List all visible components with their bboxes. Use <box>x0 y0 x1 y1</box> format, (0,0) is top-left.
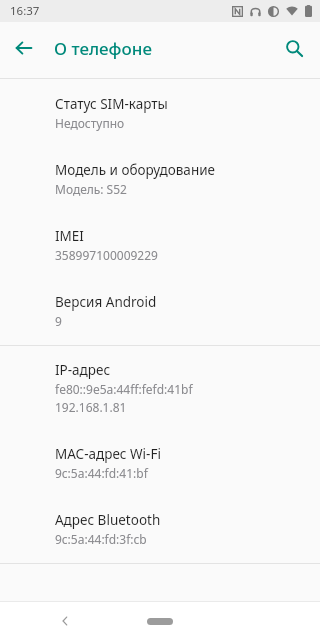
staticText: Недоступно <box>55 115 125 131</box>
staticText: О телефоне <box>54 37 152 60</box>
button[interactable]: Адрес Bluetooth <box>0 497 320 563</box>
staticText: 16:37 <box>10 3 40 19</box>
button[interactable]: Back <box>50 606 80 636</box>
button[interactable]: Back <box>6 30 42 66</box>
staticText: Статус SIM-карты <box>55 95 168 113</box>
button[interactable]: MAC-адрес Wi-Fi <box>0 431 320 497</box>
button[interactable]: IMEI <box>0 213 320 279</box>
button[interactable]: Home <box>138 609 182 633</box>
staticText: Версия Android <box>55 293 157 311</box>
button[interactable]: Версия Android <box>0 279 320 345</box>
staticText: Модель: S52 <box>55 181 127 197</box>
staticText: 358997100009229 <box>55 247 158 263</box>
staticText: MAC-адрес Wi-Fi <box>55 445 161 463</box>
staticText: 9 <box>55 313 62 329</box>
staticText: 192.168.1.81 <box>55 399 127 415</box>
staticText: Адрес Bluetooth <box>55 511 161 529</box>
staticText: IMEI <box>55 227 84 245</box>
staticText: 9c:5a:44:fd:3f:cb <box>55 531 147 547</box>
staticText: IP-адрес <box>55 361 111 379</box>
button[interactable]: Модель и оборудование <box>0 147 320 213</box>
button[interactable]: Статус SIM-карты <box>0 79 320 147</box>
staticText: 9c:5a:44:fd:41:bf <box>55 465 148 481</box>
staticText: fe80::9e5a:44ff:fefd:41bf <box>55 381 193 397</box>
staticText: Модель и оборудование <box>55 161 215 179</box>
button[interactable]: Search <box>276 30 312 66</box>
button[interactable]: IP-адрес <box>0 346 320 431</box>
